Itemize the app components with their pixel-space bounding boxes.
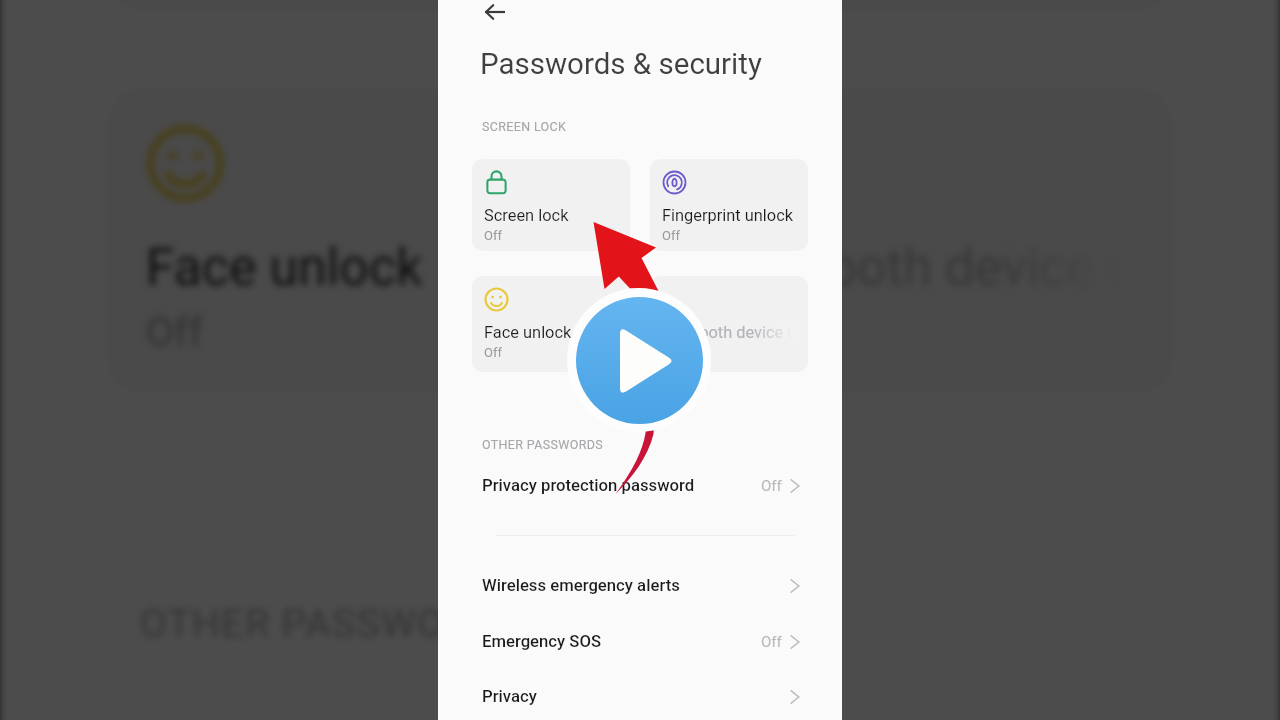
staticText: Bluetooth device unlock bbox=[662, 323, 808, 342]
staticText: Off bbox=[662, 228, 680, 243]
staticText: Passwords & security bbox=[480, 47, 762, 82]
staticText: OTHER PASSWORDS bbox=[139, 599, 526, 647]
button[interactable]: Face unlock bbox=[472, 276, 630, 372]
button[interactable]: Play video bbox=[567, 288, 711, 432]
button[interactable]: Emergency SOS bbox=[438, 620, 842, 664]
staticText: Wireless emergency alerts bbox=[482, 576, 680, 596]
staticText: Privacy bbox=[482, 687, 537, 707]
button[interactable]: Bluetooth device unlock bbox=[650, 276, 808, 372]
staticText: Face unlock bbox=[484, 323, 572, 342]
staticText: Bluetooth device unlock bbox=[710, 238, 1172, 298]
staticText: Face unlock bbox=[146, 238, 424, 298]
staticText: OTHER PASSWORDS bbox=[482, 437, 604, 452]
button[interactable]: Screen lock bbox=[108, 0, 608, 10]
staticText: Off bbox=[484, 345, 502, 360]
button[interactable]: Wireless emergency alerts bbox=[438, 564, 842, 608]
button[interactable]: Privacy protection password bbox=[0, 685, 1280, 720]
staticText: Off bbox=[761, 477, 782, 495]
button[interactable]: Privacy protection password bbox=[438, 464, 842, 508]
button[interactable]: Bluetooth device unlock bbox=[672, 89, 1172, 393]
staticText: Fingerprint unlock bbox=[662, 206, 794, 225]
staticText: Screen lock bbox=[484, 206, 569, 225]
staticText: Off bbox=[761, 633, 782, 651]
staticText: Privacy protection password bbox=[482, 476, 695, 496]
button[interactable]: Fingerprint unlock bbox=[672, 0, 1172, 10]
button[interactable]: Privacy bbox=[438, 675, 842, 719]
button[interactable]: Screen lock bbox=[472, 159, 630, 251]
button[interactable]: Face unlock bbox=[108, 89, 608, 393]
staticText: Off bbox=[146, 308, 203, 355]
staticText: Emergency SOS bbox=[482, 632, 602, 652]
staticText: Off bbox=[484, 228, 502, 243]
staticText: SCREEN LOCK bbox=[482, 119, 567, 134]
button[interactable]: Back bbox=[472, 0, 512, 32]
button[interactable]: Fingerprint unlock bbox=[650, 159, 808, 251]
